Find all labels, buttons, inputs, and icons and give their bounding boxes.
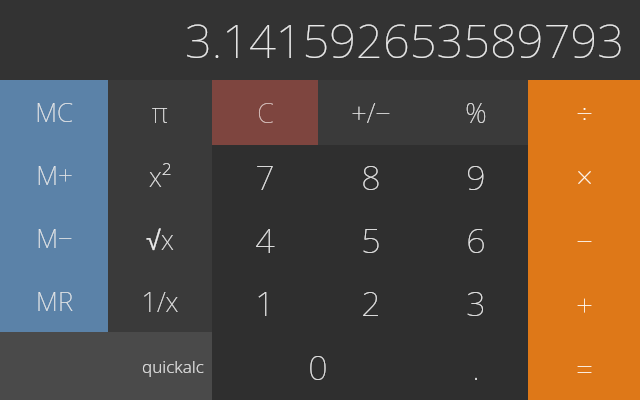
staticText: 6	[466, 217, 486, 263]
button[interactable]: 2	[318, 271, 423, 334]
staticText: π	[152, 94, 168, 131]
button[interactable]: C	[212, 80, 318, 145]
button[interactable]: 1/x	[108, 271, 212, 332]
staticText: 4	[255, 217, 275, 263]
staticText: −	[576, 221, 593, 260]
button[interactable]: MR	[0, 269, 108, 332]
button[interactable]: Subtract	[528, 208, 640, 272]
staticText: %	[465, 94, 487, 131]
button[interactable]: 3	[423, 271, 528, 334]
staticText: +	[576, 285, 593, 324]
button[interactable]: .	[423, 334, 528, 400]
button[interactable]: 1	[212, 271, 318, 334]
button[interactable]: M+	[0, 143, 108, 206]
staticText: MC	[35, 94, 73, 129]
staticText: M−	[36, 220, 73, 255]
staticText: MR	[36, 283, 73, 318]
staticText: =	[576, 349, 593, 388]
staticText: √x	[146, 221, 174, 258]
button[interactable]: 4	[212, 208, 318, 271]
button[interactable]: 7	[212, 145, 318, 208]
staticText: 1/x	[141, 283, 179, 320]
button[interactable]: 0	[212, 334, 423, 400]
staticText: +/−	[351, 94, 391, 131]
button[interactable]: MC	[0, 80, 108, 143]
button[interactable]: Multiply	[528, 144, 640, 208]
button[interactable]: 5	[318, 208, 423, 271]
staticText: 3	[466, 280, 486, 326]
button[interactable]: 9	[423, 145, 528, 208]
staticText: M+	[36, 157, 73, 192]
staticText: 3.141592653589793	[185, 8, 624, 72]
staticText: 1	[255, 280, 275, 326]
button[interactable]: quickalc	[108, 332, 212, 400]
button[interactable]: M−	[0, 206, 108, 269]
staticText: x²	[149, 158, 171, 195]
staticText: 0	[308, 344, 328, 390]
button[interactable]: 6	[423, 208, 528, 271]
staticText: 5	[361, 217, 381, 263]
button[interactable]: +/−	[318, 80, 424, 145]
button[interactable]: π	[108, 80, 212, 145]
staticText: C	[257, 94, 274, 131]
button[interactable]: √x	[108, 208, 212, 271]
staticText: .	[472, 344, 480, 390]
button[interactable]: 8	[318, 145, 423, 208]
staticText: ×	[576, 157, 593, 196]
staticText: 2	[361, 280, 381, 326]
staticText: 7	[255, 154, 275, 200]
staticText: quickalc	[142, 355, 204, 378]
button[interactable]: %	[424, 80, 528, 145]
button[interactable]: Divide	[528, 80, 640, 144]
button[interactable]: Equals	[528, 336, 640, 400]
button[interactable]: Add	[528, 272, 640, 336]
staticText: 8	[361, 154, 381, 200]
staticText: 9	[466, 154, 486, 200]
staticText: ÷	[576, 93, 593, 132]
button[interactable]: x²	[108, 145, 212, 208]
